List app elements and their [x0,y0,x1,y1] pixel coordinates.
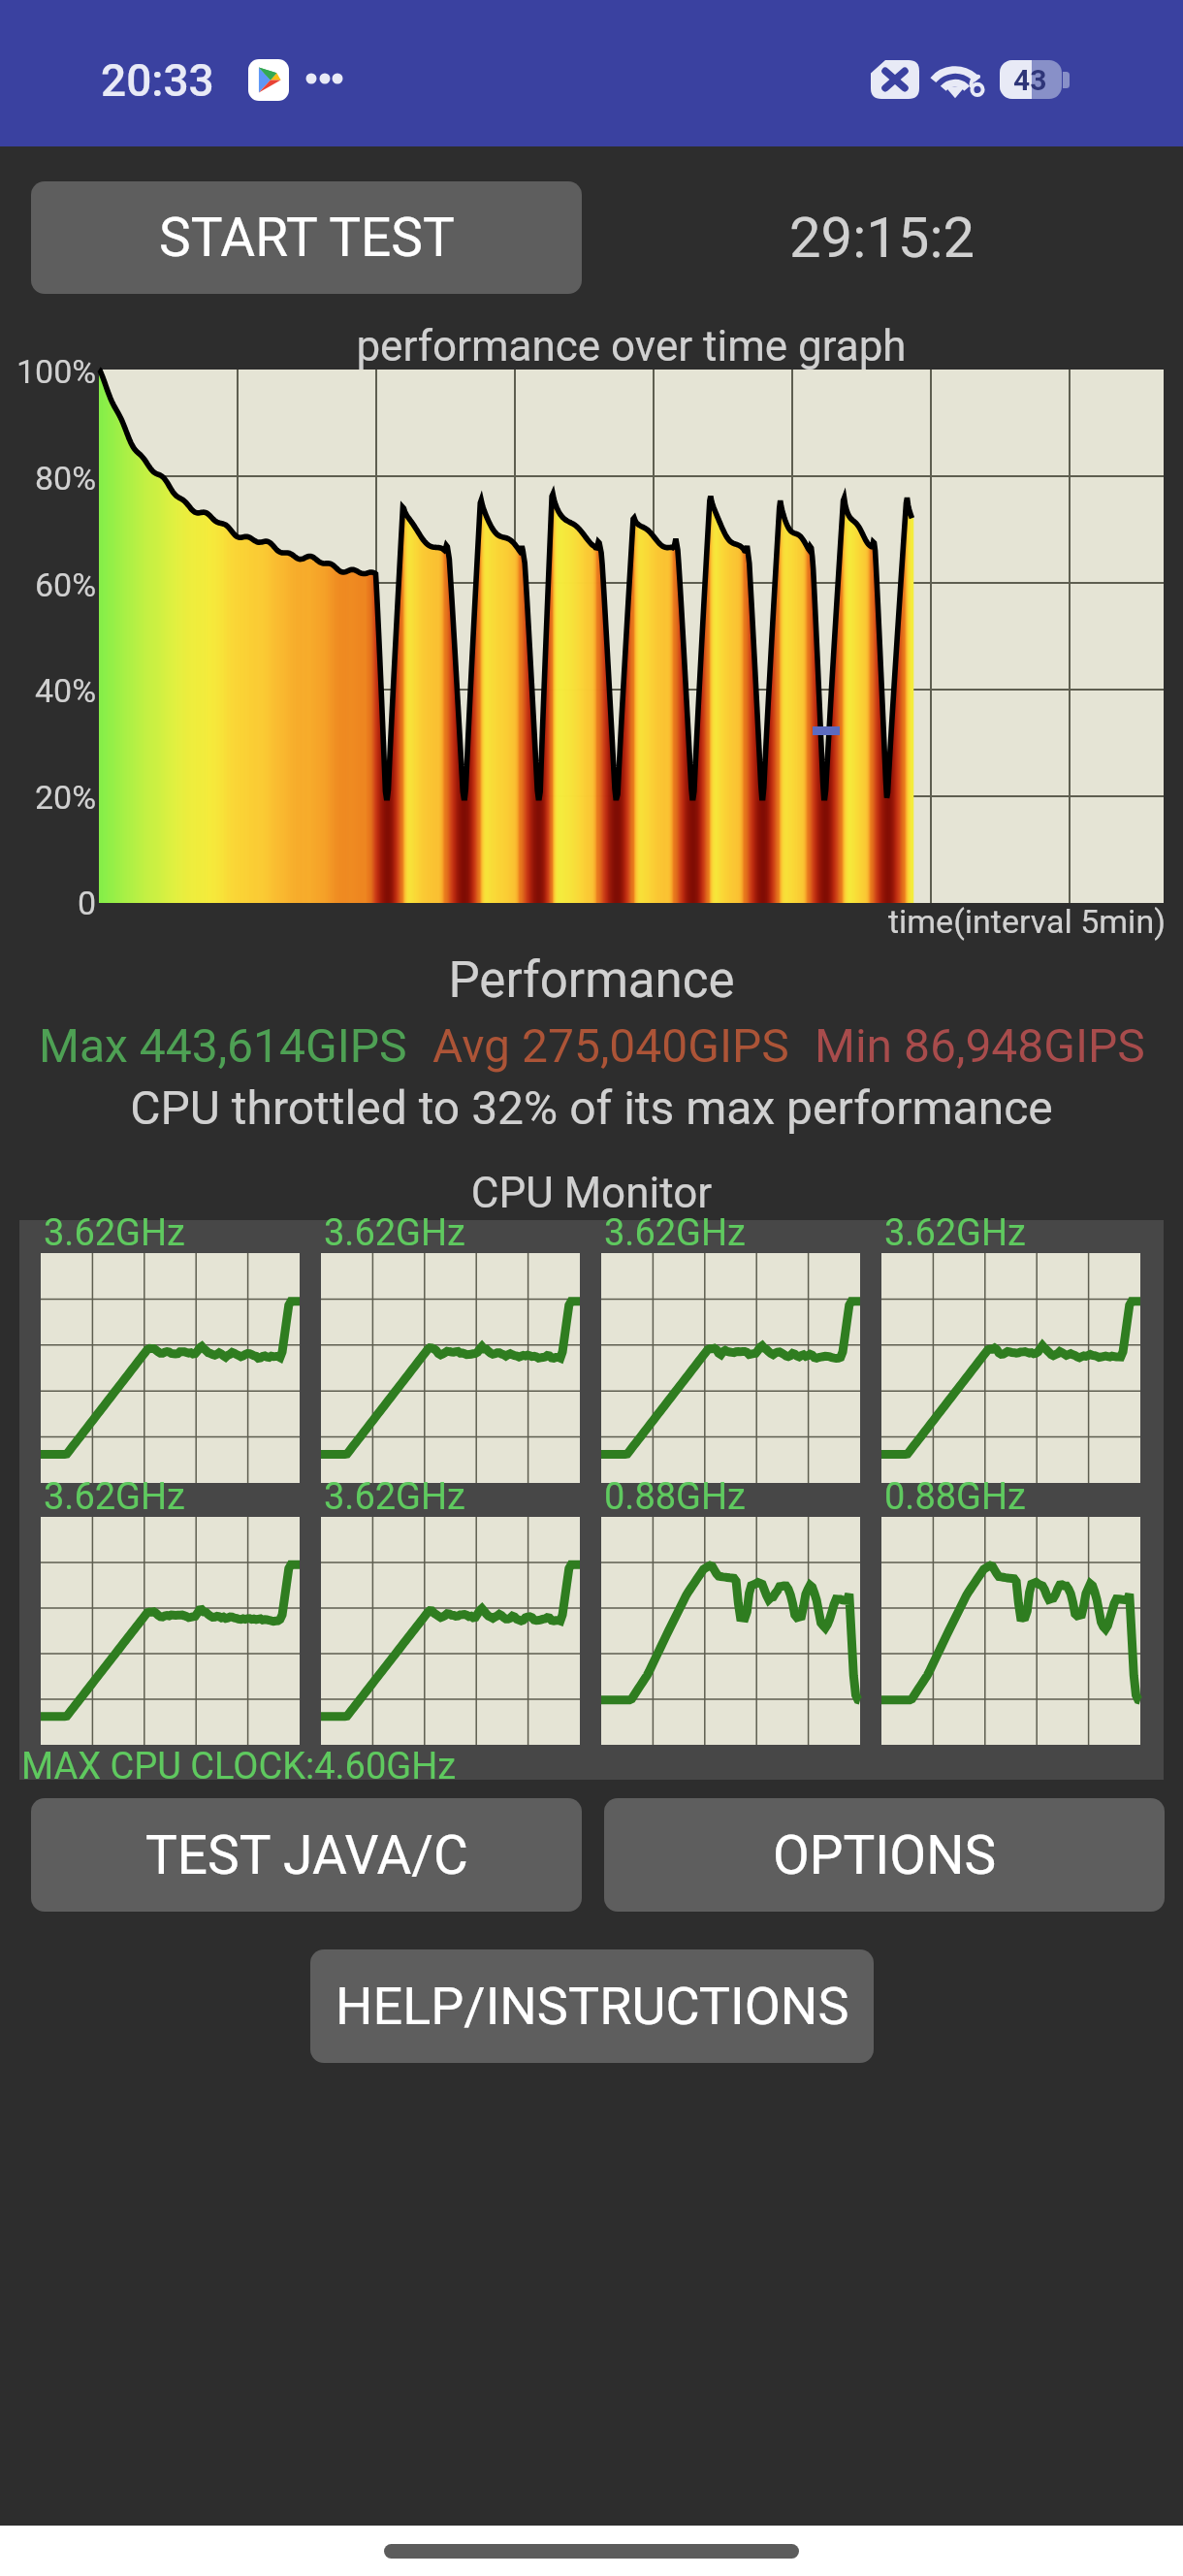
staticText: 3.62GHz [324,1211,465,1255]
button[interactable]: TEST JAVA/C [31,1798,582,1912]
staticText: OPTIONS [773,1824,997,1886]
staticText: 20% [35,778,97,817]
other: Wi-Fi [932,60,987,99]
staticText: 3.62GHz [44,1211,185,1255]
button[interactable]: HELP/INSTRUCTIONS [310,1949,874,2063]
button[interactable]: START TEST [31,181,582,294]
staticText: 3.62GHz [884,1211,1026,1255]
staticText: 3.62GHz [44,1475,185,1519]
staticText: CPU throttled to 32% of its max performa… [0,1080,1183,1135]
staticText: Performance [0,951,1183,1010]
staticText: 60% [35,565,97,604]
staticText: 43 [1013,63,1047,97]
staticText: 3.62GHz [604,1211,746,1255]
staticText: 100% [16,352,97,391]
button[interactable]: OPTIONS [604,1798,1165,1912]
staticText: 3.62GHz [324,1475,465,1519]
staticText: HELP/INSTRUCTIONS [336,1976,849,2037]
staticText: Avg 275,040GIPS [432,1018,789,1073]
staticText: 80% [35,459,97,498]
staticText: START TEST [159,207,455,269]
staticText: 20:33 [101,54,214,107]
staticText: 40% [35,671,97,710]
staticText: 0 [78,884,97,922]
staticText: MAX CPU CLOCK:4.60GHz [21,1745,457,1780]
staticText: 0.88GHz [884,1475,1026,1519]
staticText: CPU Monitor [0,1168,1183,1217]
staticText: Min 86,948GIPS [815,1018,1145,1073]
staticText: Max 443,614GIPS [39,1018,407,1073]
staticText: TEST JAVA/C [145,1824,468,1886]
other: No SIM [871,60,919,99]
staticText: performance over time graph [99,321,1164,371]
staticText: time(interval 5min) [0,902,1166,941]
staticText: 0.88GHz [604,1475,746,1519]
staticText: 29:15:2 [789,205,975,271]
